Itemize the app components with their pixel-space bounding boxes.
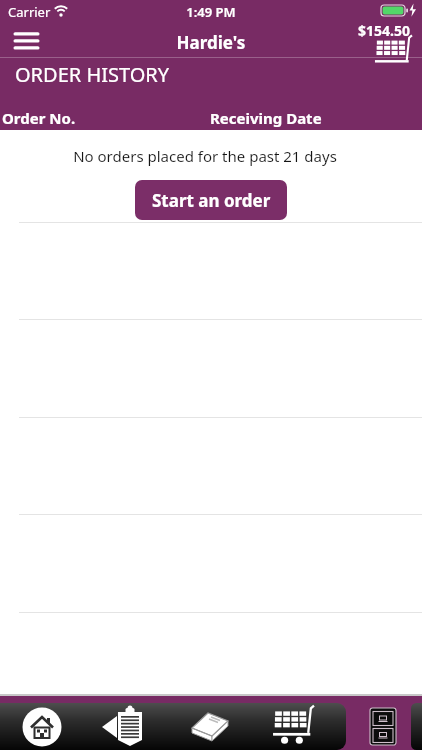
staticText: Hardie's (0, 31, 422, 54)
staticText: 1:49 PM (0, 3, 422, 21)
button[interactable] (182, 703, 238, 750)
button[interactable] (98, 703, 154, 750)
button[interactable]: Start an order (135, 180, 287, 220)
staticText: No orders placed for the past 21 days (0, 146, 416, 166)
staticText: $154.50 (358, 21, 410, 40)
button[interactable] (374, 38, 418, 66)
button[interactable] (9, 27, 45, 55)
staticText: Carrier (8, 3, 51, 21)
staticText: Receiving Date (210, 108, 322, 128)
staticText: Order No. (2, 108, 76, 128)
staticText: Start an order (152, 189, 271, 212)
button[interactable] (355, 703, 411, 750)
button[interactable] (265, 703, 321, 750)
button[interactable] (14, 703, 70, 750)
staticText: ORDER HISTORY (15, 61, 170, 88)
